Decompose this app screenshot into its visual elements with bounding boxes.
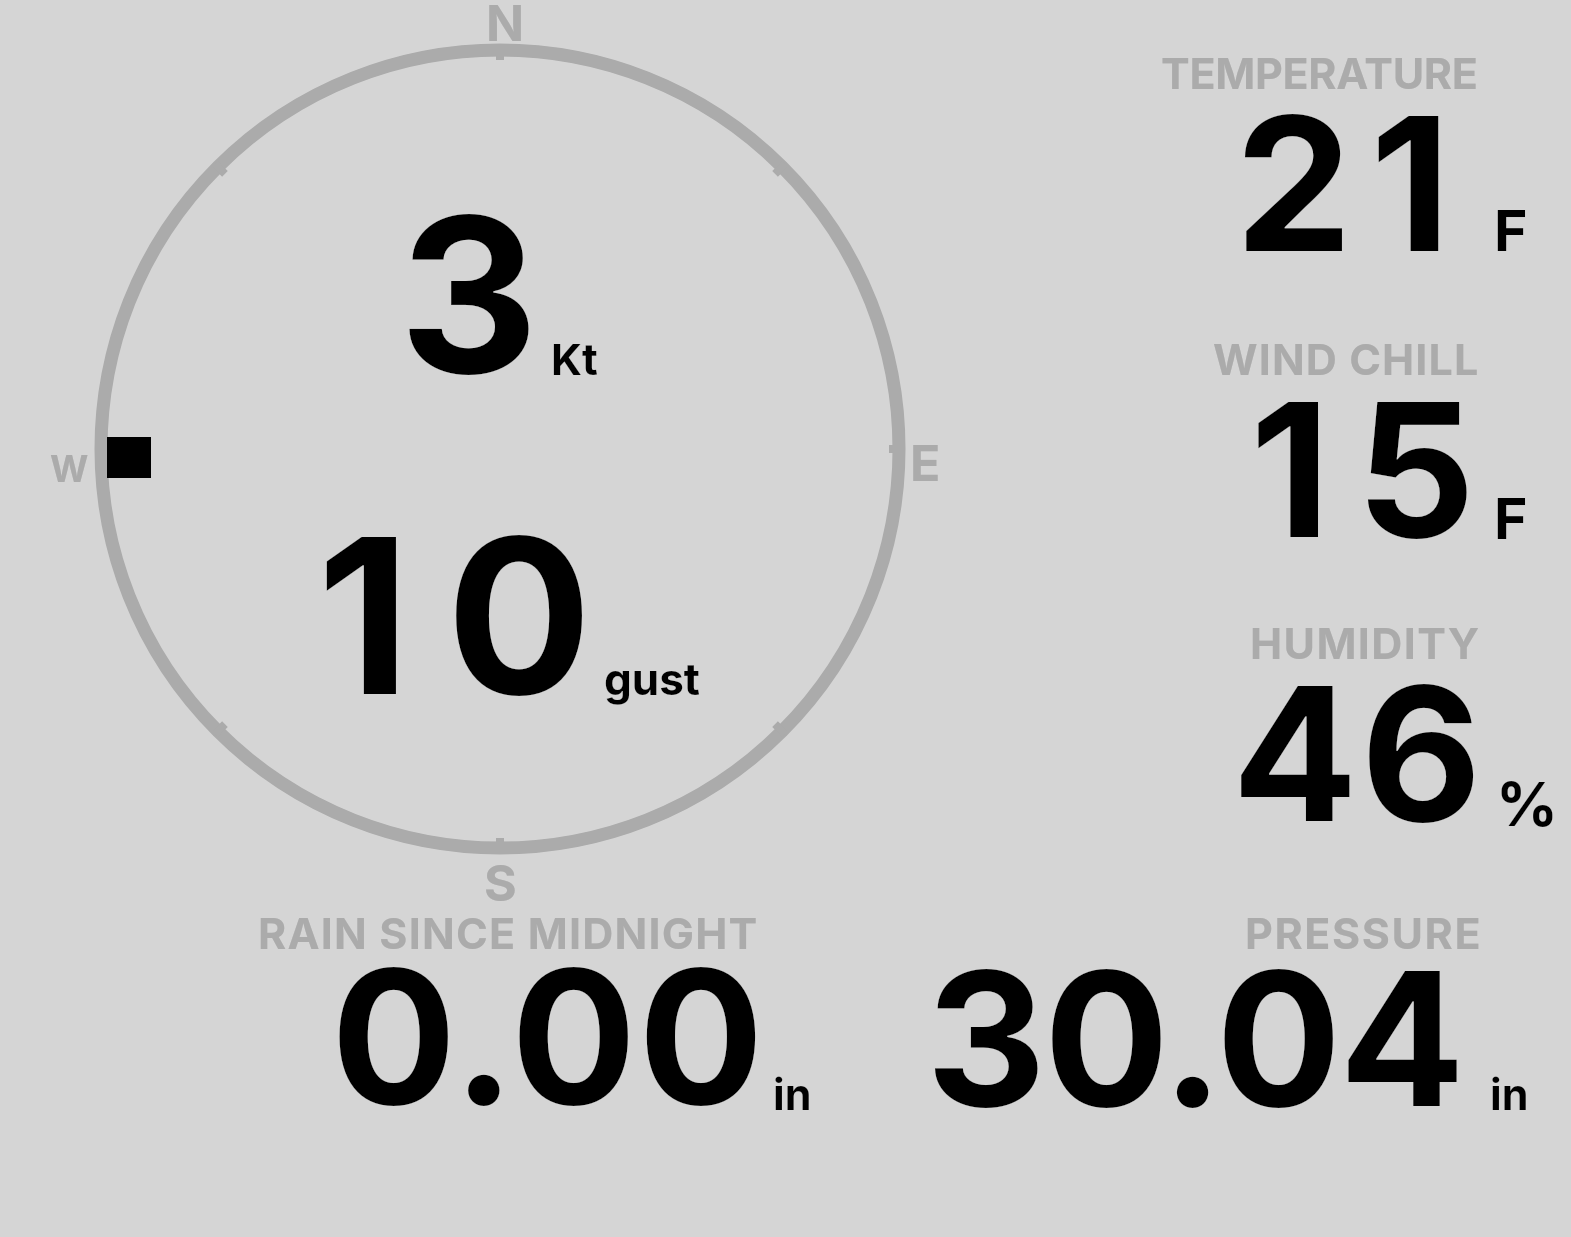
staticText: in <box>1490 1068 1529 1120</box>
button[interactable]: Temperature 21 degrees Fahrenheit <box>1150 40 1560 270</box>
button[interactable]: Wind direction compass, 3 knots gusting … <box>80 20 960 900</box>
staticText: 46 <box>1232 641 1485 866</box>
button[interactable]: Wind chill 15 degrees Fahrenheit <box>1150 328 1560 558</box>
staticText: in <box>773 1068 812 1120</box>
staticText: RAIN SINCE MIDNIGHT <box>258 907 759 959</box>
staticText: S <box>484 853 517 913</box>
staticText: TEMPERATURE <box>1161 47 1478 99</box>
button[interactable]: Rain since midnight 0.00 inches <box>250 902 830 1122</box>
staticText: E <box>910 433 941 493</box>
staticText: 10 <box>317 485 628 746</box>
button[interactable]: Humidity 46 percent <box>1150 612 1570 842</box>
staticText: 3 <box>399 164 539 425</box>
staticText: N <box>486 0 525 53</box>
staticText: Kt <box>551 333 598 385</box>
staticText: HUMIDITY <box>1250 617 1481 669</box>
staticText: W <box>50 446 89 491</box>
staticText: F <box>1494 484 1528 553</box>
staticText: 15 <box>1250 357 1502 582</box>
staticText: gust <box>604 652 700 705</box>
staticText: 0.00 <box>331 924 766 1149</box>
staticText: PRESSURE <box>1245 907 1483 959</box>
staticText: 21 <box>1235 71 1469 296</box>
staticText: F <box>1494 196 1528 265</box>
staticText: % <box>1496 767 1558 841</box>
button[interactable]: Pressure 30.04 inches <box>900 902 1550 1122</box>
staticText: 30.04 <box>926 926 1463 1151</box>
staticText: WIND CHILL <box>1213 333 1480 385</box>
